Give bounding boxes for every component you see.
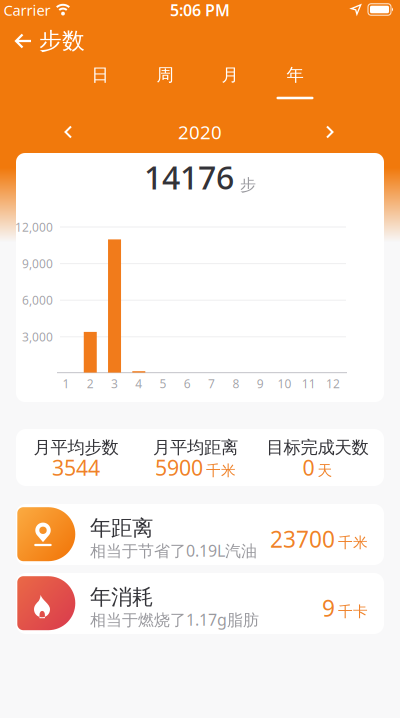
staticText: 3 xyxy=(111,375,118,391)
staticText: 14176 xyxy=(144,156,234,198)
staticText: 目标完成天数 xyxy=(266,437,368,458)
staticText: 相当于节省了0.19L汽油 xyxy=(90,540,257,561)
staticText: 年消耗 xyxy=(90,584,153,610)
staticText: 1 xyxy=(62,375,69,391)
staticText: 2 xyxy=(87,375,94,391)
staticText: 9 xyxy=(322,593,335,623)
staticText: 月平均距离 xyxy=(153,437,238,458)
button[interactable]: 年消耗 xyxy=(16,573,384,634)
staticText: 7 xyxy=(208,375,215,391)
button[interactable]: 年 xyxy=(280,58,309,92)
staticText: 周 xyxy=(156,64,173,86)
button[interactable]: Previous year xyxy=(56,117,80,146)
staticText: 5 xyxy=(160,375,167,391)
staticText: 千卡 xyxy=(338,603,368,621)
staticText: 年 xyxy=(286,64,303,86)
staticText: 6 xyxy=(184,375,191,391)
staticText: 9 xyxy=(257,375,264,391)
staticText: 千米 xyxy=(338,534,368,552)
button[interactable]: 周 xyxy=(150,58,179,92)
staticText: 5900 xyxy=(155,453,203,482)
staticText: 8 xyxy=(232,375,239,391)
staticText: 步数 xyxy=(39,27,85,55)
staticText: 12 xyxy=(326,375,340,391)
staticText: 年距离 xyxy=(90,515,153,541)
staticText: 月平均步数 xyxy=(33,437,118,458)
staticText: 11 xyxy=(302,375,316,391)
button[interactable]: Back xyxy=(8,27,38,55)
staticText: 12,000 xyxy=(15,219,53,235)
staticText: 3544 xyxy=(52,453,100,482)
button[interactable]: Next year xyxy=(318,117,342,146)
staticText: 0 xyxy=(302,453,314,482)
button[interactable]: 年距离 xyxy=(16,504,384,565)
staticText: 6,000 xyxy=(22,292,53,308)
button[interactable]: 月 xyxy=(215,58,244,92)
staticText: 天 xyxy=(317,462,332,480)
staticText: 23700 xyxy=(270,524,335,554)
staticText: 日 xyxy=(91,64,108,86)
staticText: 步 xyxy=(240,175,256,195)
staticText: 千米 xyxy=(206,462,236,480)
staticText: 2020 xyxy=(178,120,222,144)
staticText: 相当于燃烧了1.17g脂肪 xyxy=(90,609,259,630)
staticText: 4 xyxy=(135,375,142,391)
staticText: Carrier xyxy=(3,0,50,20)
button[interactable]: 日 xyxy=(85,58,114,92)
staticText: 10 xyxy=(277,375,291,391)
staticText: 5:06 PM xyxy=(170,0,230,21)
staticText: 3,000 xyxy=(22,329,53,345)
staticText: 9,000 xyxy=(22,256,53,271)
staticText: 月 xyxy=(221,64,238,86)
